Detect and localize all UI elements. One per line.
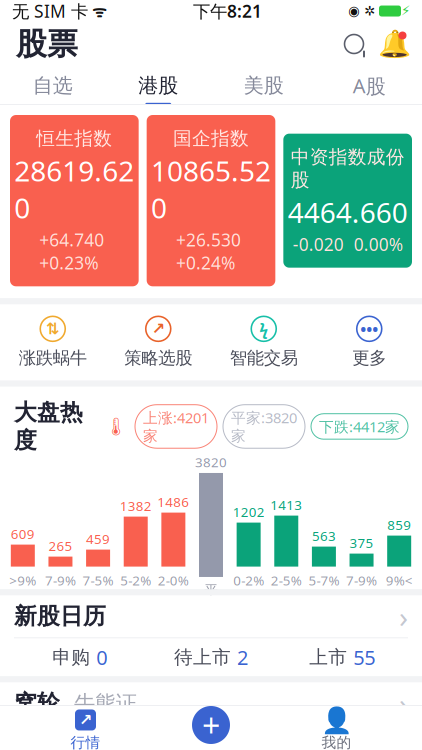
staticText: 459 [86,530,110,548]
staticText: 美股 [244,73,284,98]
staticText: 2-0% [158,572,189,589]
staticText: 智能交易 [230,347,298,369]
button[interactable]: A股 [316,66,422,104]
staticText: ⚡︎ [401,3,410,18]
staticText: 5-2% [120,572,151,589]
staticText: 859 [387,516,411,534]
button[interactable]: 👤 [251,709,422,750]
button[interactable]: ••• [316,316,422,369]
button[interactable]: ⇅ [0,316,105,369]
staticText: 更多 [352,347,386,369]
staticText: -0.020 0.00% [293,233,403,256]
staticText: 股票 [16,25,78,63]
staticText: 无 SIM 卡 [12,0,88,22]
button[interactable]: 国企指数 [147,115,275,286]
staticText: › [399,684,408,723]
staticText: ↗ [79,711,92,729]
staticText: 5-7% [308,572,339,589]
staticText: 0-2% [233,572,264,589]
staticText: +64.740 +0.23% [39,228,109,274]
button[interactable]: ϟ [211,316,316,369]
staticText: 恒生指数 [36,127,112,150]
button[interactable]: ✦ [216,724,408,750]
button[interactable]: 窝轮 [14,689,60,717]
staticText: 265 [48,537,72,555]
button[interactable]: 申购 [14,644,145,671]
button[interactable]: 添加 [192,706,230,744]
staticText: 4464.660 [288,193,408,231]
staticText: 7-9% [346,572,377,589]
staticText: A股 [353,72,386,99]
staticText: ✦ [347,736,398,750]
staticText: › [399,597,408,636]
staticText: 大盘热度 [14,399,83,454]
staticText: 上涨:4201家 [143,408,209,445]
staticText: ᯤ [88,0,107,22]
button[interactable]: 上市 [277,644,408,671]
staticText: + [202,704,220,746]
staticText: 新股日历 [14,602,106,630]
staticText: 中资指数成份股 [291,146,405,191]
staticText: 563 [312,527,336,545]
staticText: 实时20大窝轮 [27,733,156,750]
staticText: 609 [11,525,35,543]
staticText: 1413 [270,496,302,514]
button[interactable]: ◴ [14,724,206,750]
staticText: 待上市 [174,646,231,669]
staticText: 平家:3820家 [231,408,297,445]
staticText: 涨跌蜗牛 [19,347,87,369]
staticText: 🔔 [377,29,410,59]
staticText: 3820 [195,453,227,471]
button[interactable]: 恒生指数 [10,115,139,286]
staticText: 下午8:21 [193,0,262,22]
button[interactable]: 美股 [211,66,316,104]
staticText: +26.530 +0.24% [176,228,246,274]
button[interactable]: 港股 [105,66,211,104]
staticText: ◉ ✲ [348,3,375,18]
button[interactable]: 更多窝轮 [399,684,408,723]
staticText: 自选 [33,73,73,98]
staticText: ϟ [259,318,268,339]
button[interactable]: 新股日历 [0,595,422,637]
staticText: 1202 [233,503,265,521]
staticText: 10865.520 [151,152,271,226]
staticText: ↗ [152,320,165,338]
staticText: 1486 [157,493,189,511]
button[interactable]: 通知 [374,24,414,64]
staticText: 行情 [70,733,100,750]
staticText: 平 [204,582,217,598]
button[interactable]: 牛熊证 [60,690,137,716]
staticText: 申购 [52,646,90,669]
button[interactable]: ↗ [0,709,171,750]
button[interactable]: ↗ [105,316,211,369]
staticText: 2-5% [271,572,302,589]
staticText: 0 [96,644,107,671]
staticText: 我的 [321,733,351,750]
staticText: 375 [349,534,373,552]
staticText: >9% [9,572,36,589]
staticText: 👤 [320,705,352,734]
staticText: 策略选股 [124,347,192,369]
staticText: 牛熊证 [74,690,137,716]
staticText: 上市 [309,646,347,669]
staticText: ••• [360,318,378,339]
staticText: 窝轮 [14,689,60,717]
button[interactable]: 中资指数成份股 [283,134,412,268]
staticText: ⇅ [46,320,59,338]
staticText: 7-9% [45,572,76,589]
staticText: 🌡 [83,417,127,436]
staticText: 国企指数 [173,127,249,150]
staticText: 7-5% [83,572,114,589]
staticText: 下跌:4412家 [319,417,400,436]
button[interactable]: 搜索 [334,24,374,64]
button[interactable]: 待上市 [145,644,277,671]
staticText: 高风险 [324,739,363,750]
staticText: 55 [353,644,375,671]
staticText: 9%< [386,572,413,589]
staticText: 28619.620 [14,152,134,226]
button[interactable]: 自选 [0,66,105,104]
staticText: 2 [237,644,248,671]
staticText: 港股 [138,73,178,98]
